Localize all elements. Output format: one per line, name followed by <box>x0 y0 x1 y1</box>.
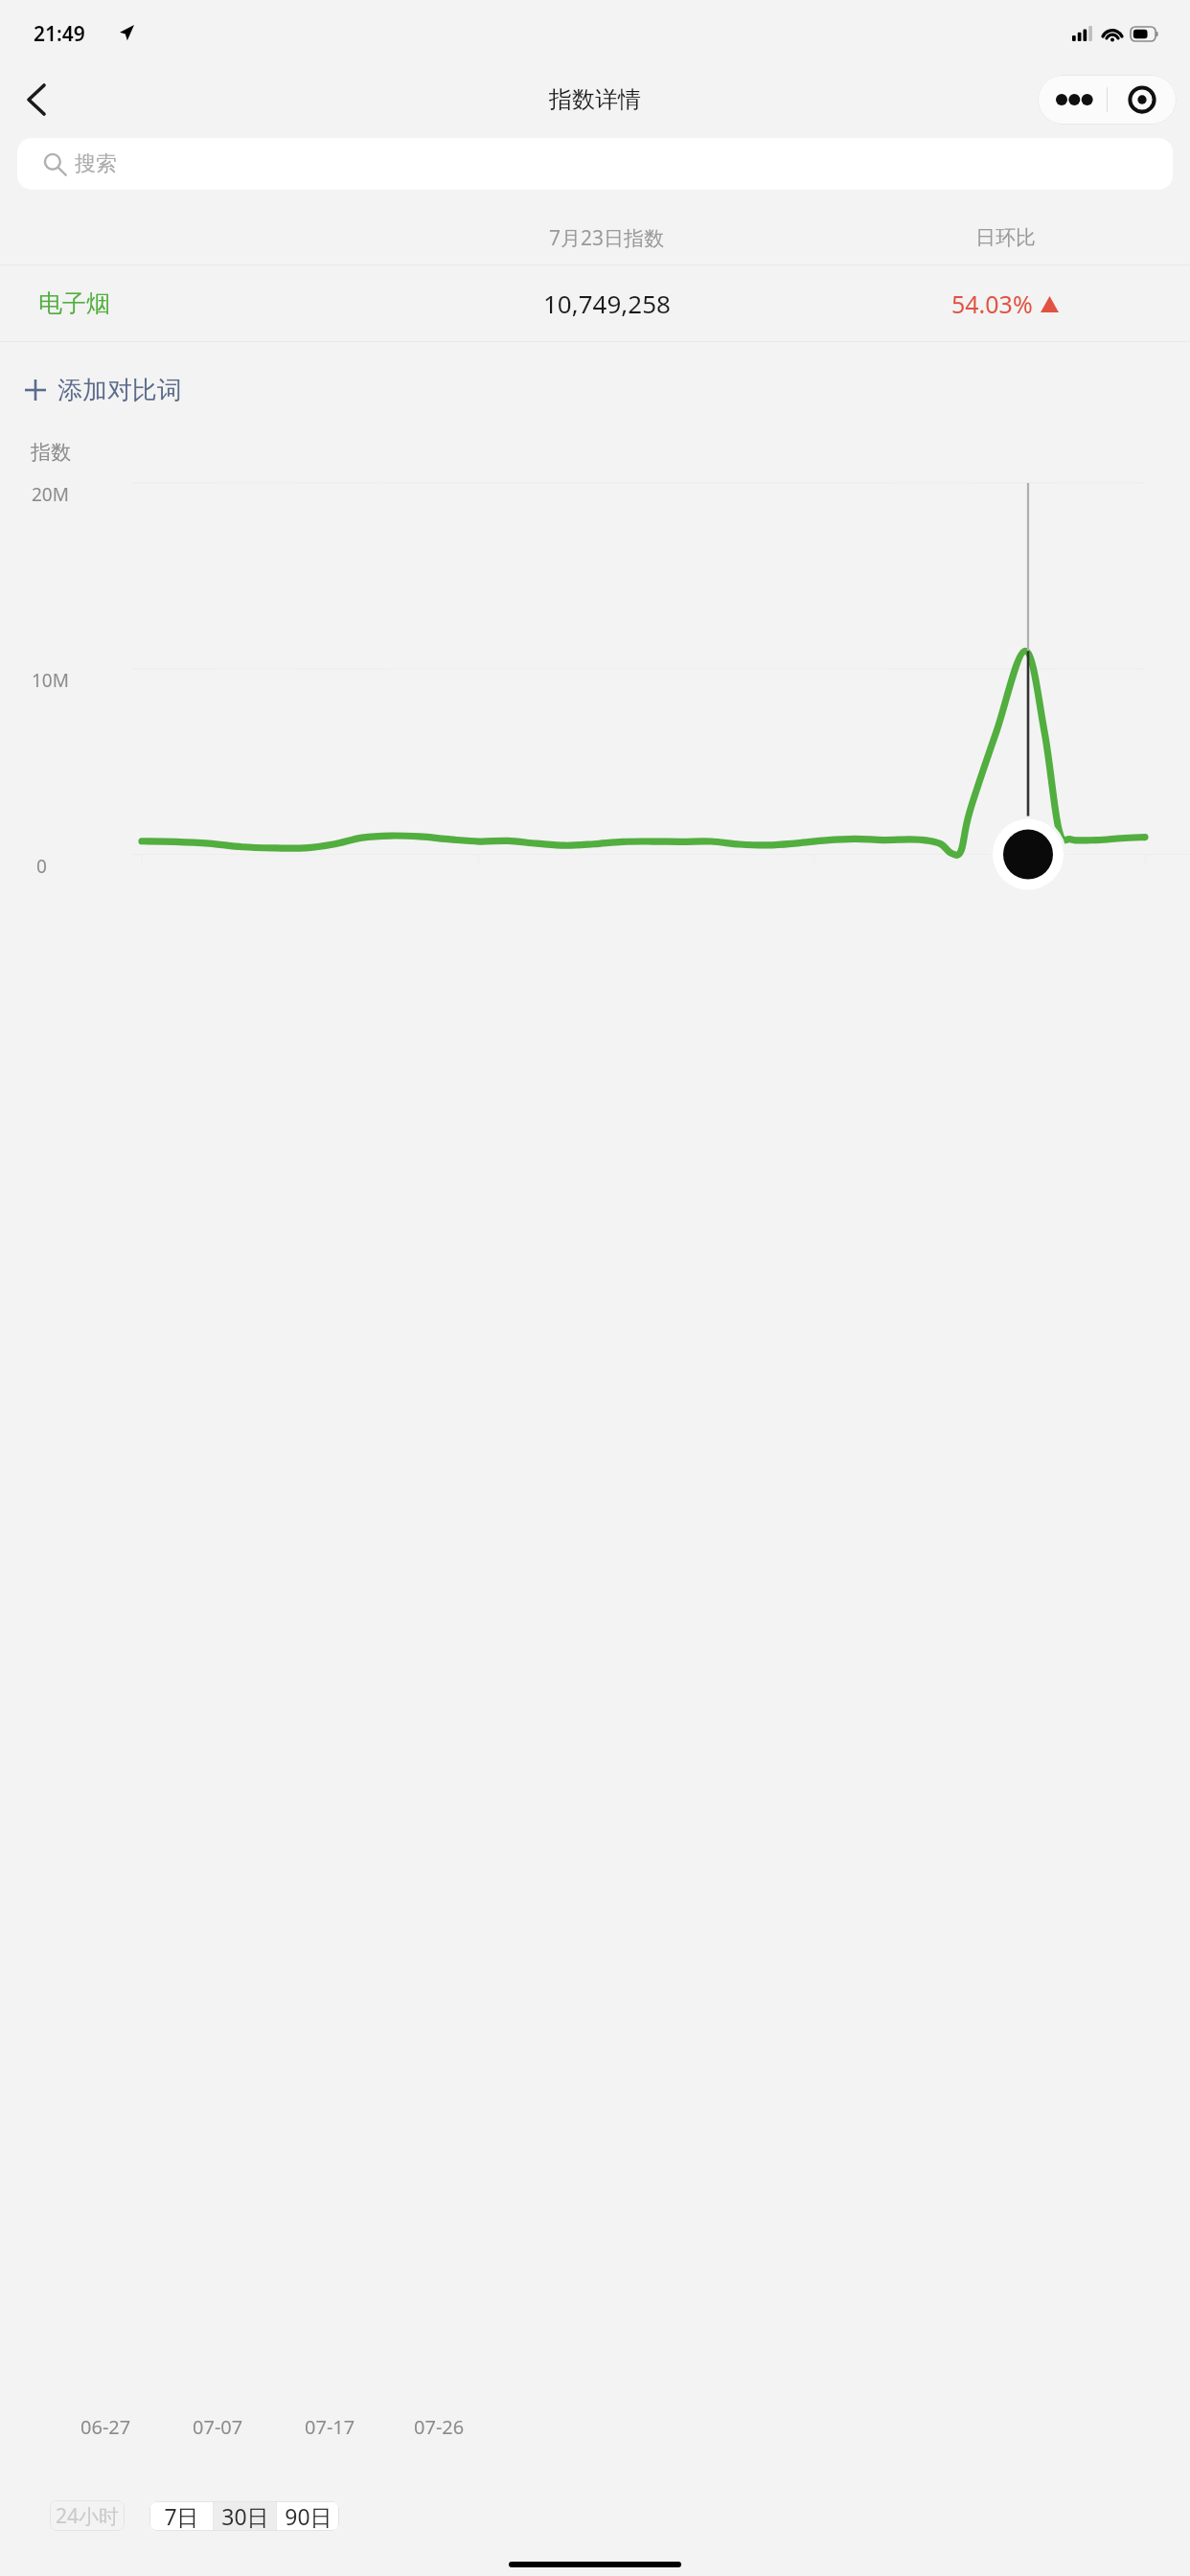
staticText: 90日 <box>285 2501 332 2531</box>
staticText: 20M <box>32 482 69 507</box>
button[interactable]: 90日 <box>277 2501 339 2531</box>
staticText: 54.03% <box>951 287 1033 320</box>
staticText: 30日 <box>221 2501 269 2531</box>
staticText: 指数详情 <box>549 85 641 114</box>
button[interactable]: 24小时 <box>50 2500 125 2531</box>
staticText: 24小时 <box>56 2502 120 2530</box>
button[interactable]: 电子烟 <box>0 265 1190 341</box>
staticText: 7月23日指数 <box>549 224 665 252</box>
staticText: 10,749,258 <box>543 287 671 320</box>
staticText: 添加对比词 <box>57 375 182 406</box>
staticText: 21:49 <box>34 20 85 48</box>
button[interactable]: 搜索 <box>17 138 1173 190</box>
button[interactable]: 7日 <box>149 2501 213 2531</box>
staticText: 0 <box>36 854 47 879</box>
staticText: 搜索 <box>75 150 117 177</box>
staticText: 10M <box>32 668 69 693</box>
staticText: 指数 <box>31 440 71 465</box>
button[interactable]: Target <box>1108 75 1177 125</box>
button[interactable]: More <box>1038 75 1107 125</box>
button[interactable]: Back <box>10 73 63 126</box>
staticText: 电子烟 <box>38 288 110 318</box>
button[interactable]: 添加对比词 <box>25 363 182 417</box>
staticText: 07-17 <box>305 2414 355 2440</box>
staticText: 07-07 <box>193 2414 243 2440</box>
staticText: 06-27 <box>80 2414 131 2440</box>
staticText: 日环比 <box>975 225 1036 250</box>
staticText: 07-26 <box>414 2414 465 2440</box>
staticText: 7日 <box>164 2501 199 2531</box>
button[interactable]: 30日 <box>214 2501 276 2531</box>
